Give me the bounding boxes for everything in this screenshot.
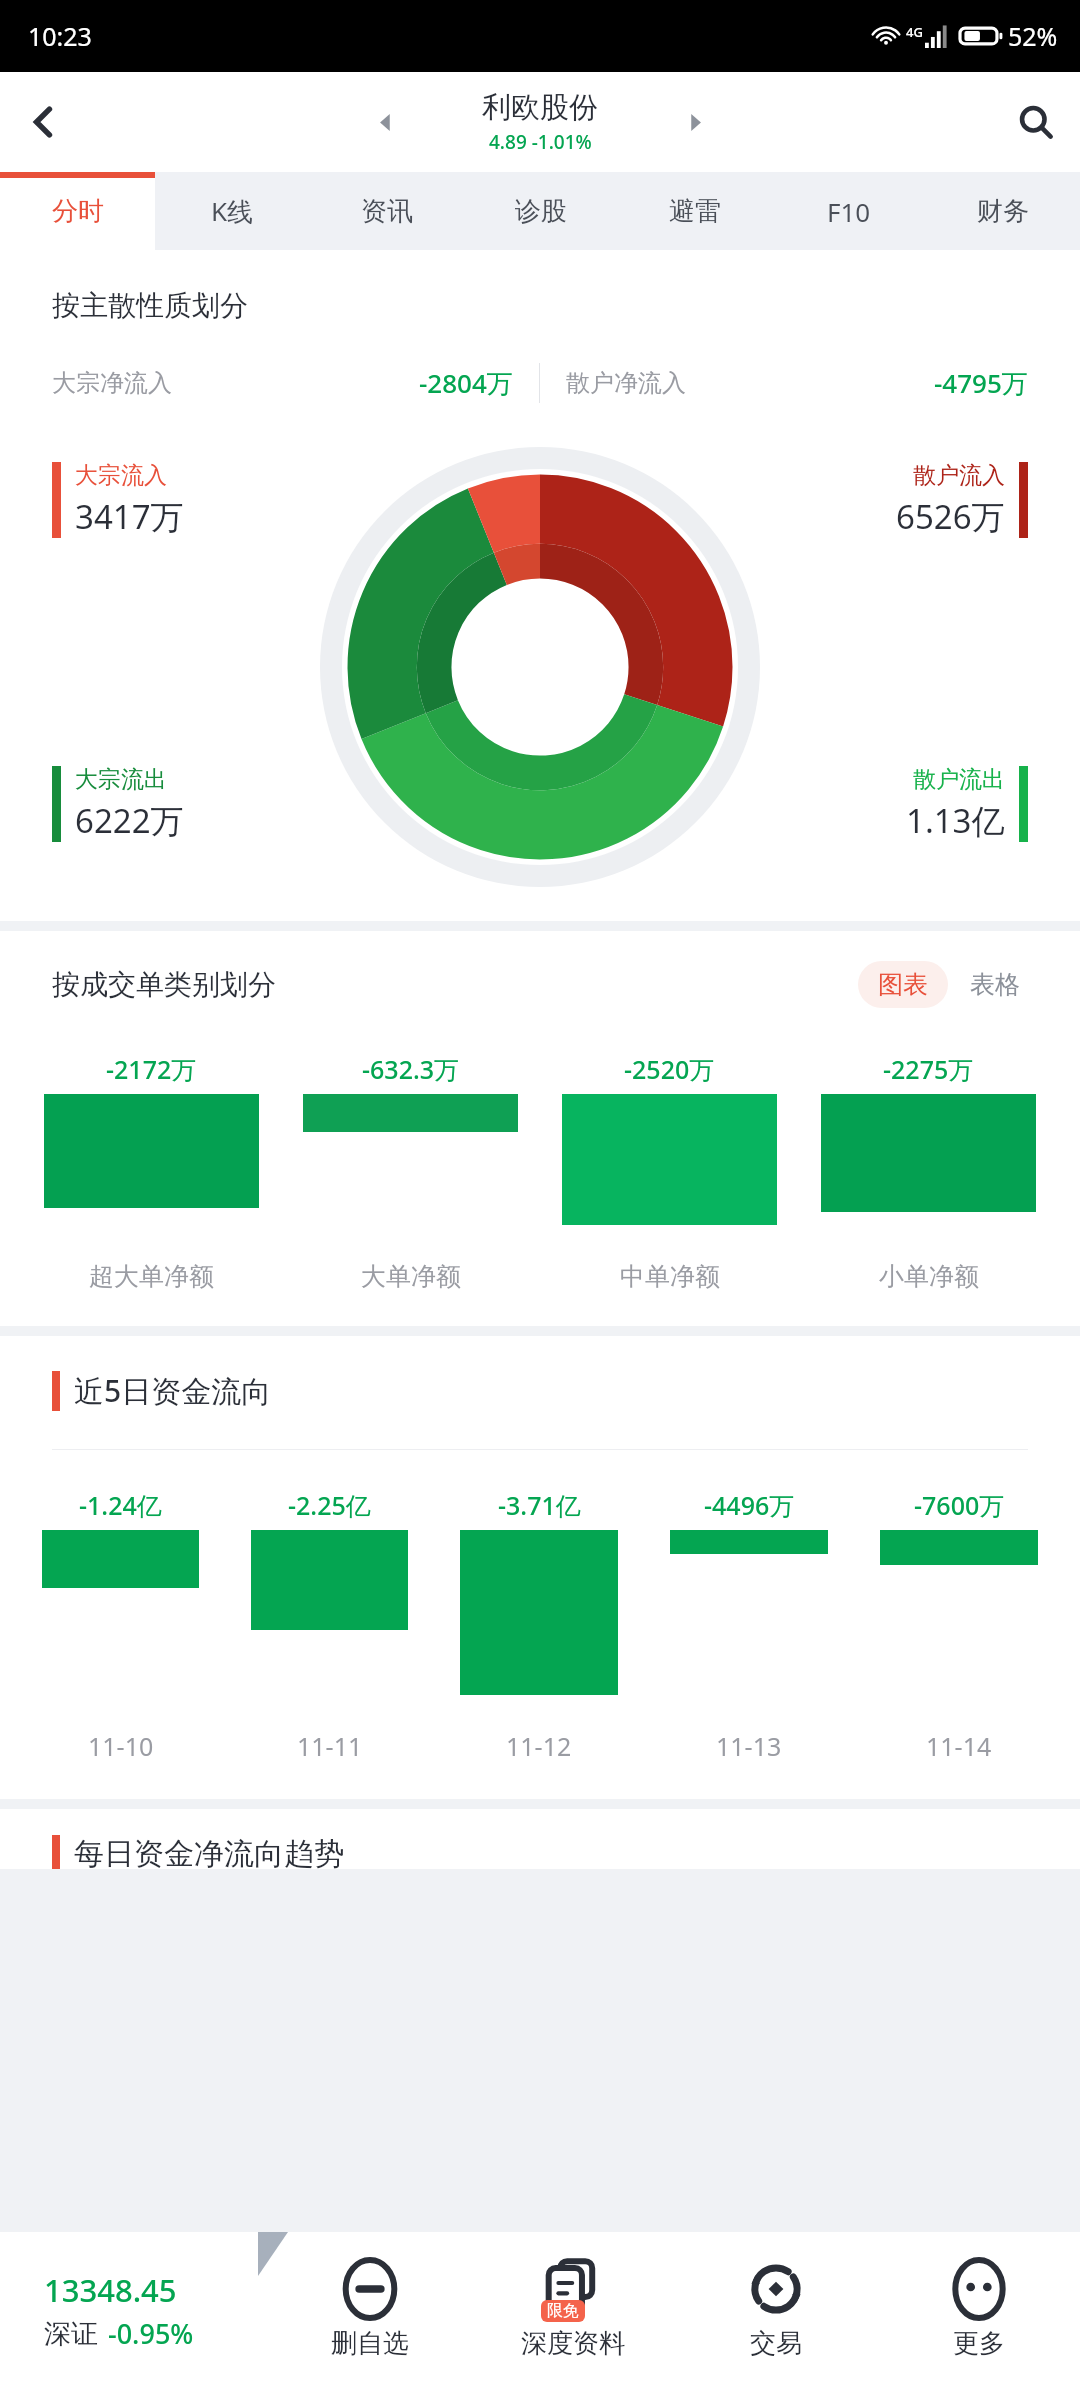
staticText: 按成交单类别划分 — [52, 967, 276, 1002]
button[interactable]: 图表 — [858, 961, 948, 1008]
staticText: 分时 — [52, 195, 104, 228]
staticText: 散户净流入 — [566, 368, 686, 398]
staticText: 交易 — [750, 2327, 802, 2360]
button[interactable]: 更多 — [877, 2232, 1080, 2388]
button[interactable]: 表格 — [962, 961, 1028, 1008]
staticText: 利欧股份 — [482, 89, 598, 126]
staticText: 11-13 — [716, 1729, 782, 1763]
staticText: 散户流入 — [913, 461, 1005, 490]
staticText: 4G — [906, 23, 923, 41]
staticText: 限免 — [547, 2301, 579, 2321]
button[interactable]: Search — [992, 78, 1080, 166]
button[interactable]: Next stock — [672, 99, 718, 145]
staticText: 6526万 — [896, 494, 1005, 539]
button[interactable]: 交易 — [674, 2232, 877, 2388]
staticText: 中单净额 — [620, 1261, 720, 1292]
staticText: 11-14 — [926, 1729, 992, 1763]
staticText: 6222万 — [75, 798, 184, 843]
staticText: K线 — [211, 193, 254, 229]
button[interactable]: 分时 — [0, 172, 155, 250]
staticText: 避雷 — [669, 195, 721, 228]
staticText: 表格 — [970, 969, 1020, 1000]
staticText: -0.95% — [108, 2315, 194, 2352]
staticText: F10 — [827, 194, 871, 229]
button[interactable]: K线 — [155, 172, 310, 250]
staticText: -2275万 — [883, 1052, 974, 1086]
staticText: 深证 — [44, 2317, 98, 2351]
staticText: -7600万 — [914, 1488, 1005, 1522]
staticText: -632.3万 — [362, 1052, 460, 1086]
staticText: 散户流出 — [913, 765, 1005, 794]
staticText: 13348.45 — [44, 2269, 177, 2311]
staticText: 11-12 — [506, 1729, 572, 1763]
staticText: 3417万 — [75, 494, 184, 539]
button[interactable]: F10 — [772, 172, 926, 250]
button[interactable]: 限免 — [471, 2232, 674, 2388]
staticText: 大单净额 — [361, 1261, 461, 1292]
staticText: 财务 — [977, 195, 1029, 228]
staticText: 删自选 — [331, 2327, 409, 2360]
button[interactable]: 诊股 — [464, 172, 618, 250]
button[interactable]: 财务 — [926, 172, 1080, 250]
staticText: -4496万 — [704, 1488, 795, 1522]
staticText: 资讯 — [361, 195, 413, 228]
staticText: 超大单净额 — [89, 1261, 214, 1292]
staticText: 10:23 — [28, 19, 92, 53]
staticText: 11-10 — [88, 1729, 154, 1763]
button[interactable]: 资讯 — [310, 172, 464, 250]
staticText: 大宗流出 — [75, 765, 167, 794]
staticText: 深度资料 — [521, 2327, 625, 2360]
staticText: -1.24亿 — [79, 1488, 162, 1522]
staticText: 每日资金净流向趋势 — [74, 1835, 344, 1869]
staticText: -2520万 — [624, 1052, 715, 1086]
staticText: -3.71亿 — [498, 1488, 581, 1522]
staticText: 按主散性质划分 — [52, 288, 248, 323]
staticText: 小单净额 — [879, 1261, 979, 1292]
staticText: 图表 — [878, 969, 928, 1000]
staticText: -2172万 — [106, 1052, 197, 1086]
staticText: -2.25亿 — [288, 1488, 371, 1522]
button[interactable]: Previous stock — [362, 99, 408, 145]
staticText: 诊股 — [515, 195, 567, 228]
staticText: 近5日资金流向 — [74, 1370, 272, 1411]
staticText: 1.13亿 — [906, 798, 1005, 843]
staticText: 11-11 — [297, 1729, 363, 1763]
button[interactable]: 避雷 — [618, 172, 772, 250]
staticText: 52% — [1008, 19, 1058, 53]
staticText: 大宗流入 — [75, 461, 167, 490]
staticText: 大宗净流入 — [52, 368, 172, 398]
staticText: 更多 — [953, 2327, 1005, 2360]
staticText: -4795万 — [934, 365, 1028, 401]
staticText: 4.89 -1.01% — [489, 129, 592, 155]
button[interactable]: 13348.45 — [0, 2269, 268, 2352]
staticText: -2804万 — [419, 365, 513, 401]
button[interactable]: 删自选 — [268, 2232, 471, 2388]
button[interactable]: Back — [0, 78, 88, 166]
